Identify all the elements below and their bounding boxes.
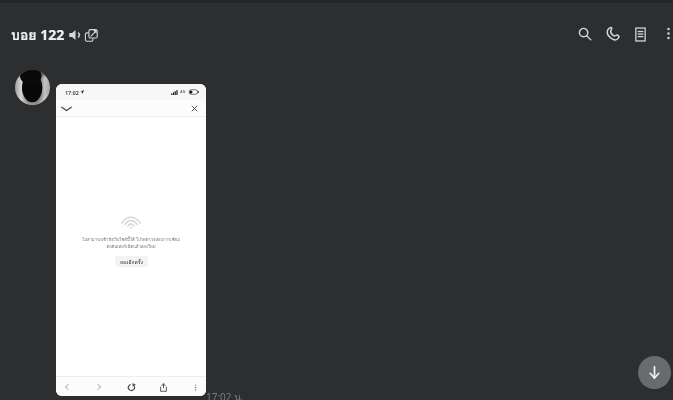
button[interactable]: Reload bbox=[124, 380, 138, 394]
button[interactable]: Back bbox=[60, 380, 74, 394]
button[interactable]: More options bbox=[656, 21, 673, 46]
button[interactable]: Collapse bbox=[60, 102, 72, 114]
staticText: ไม่สามารถเข้าถึงเว็บไซต์นี้ได้ โปรดตรวจส… bbox=[62, 236, 200, 250]
button[interactable]: Scroll to bottom bbox=[638, 356, 671, 389]
button[interactable]: ลองอีกครั้ง bbox=[115, 256, 148, 267]
staticText: 17:02 น. bbox=[206, 390, 244, 400]
button[interactable]: 17:02 bbox=[56, 84, 206, 396]
button[interactable]: Profile photo bbox=[15, 70, 50, 105]
staticText: 17:02 bbox=[65, 89, 79, 96]
staticText: ลองอีกครั้ง bbox=[120, 258, 143, 266]
staticText: บอย 122 bbox=[11, 24, 65, 46]
button[interactable]: บอย 122 bbox=[11, 24, 98, 46]
button[interactable]: Notes bbox=[627, 21, 654, 48]
button[interactable]: Forward bbox=[92, 380, 106, 394]
button[interactable]: Menu bbox=[188, 380, 202, 394]
staticText: 4G bbox=[180, 89, 186, 95]
button[interactable]: Search bbox=[572, 21, 598, 47]
button[interactable]: Close bbox=[190, 104, 199, 113]
button[interactable]: Share bbox=[156, 380, 170, 394]
button[interactable]: Call bbox=[599, 21, 626, 48]
